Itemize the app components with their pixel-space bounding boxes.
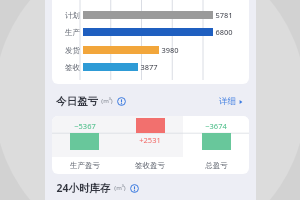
button[interactable]: +2531	[117, 116, 183, 157]
button[interactable]: 签收盈亏	[117, 157, 183, 174]
button[interactable]: 总盈亏	[183, 157, 249, 174]
staticText: −3674	[205, 121, 227, 131]
staticText: 生产	[65, 28, 80, 37]
staticText: 24小时库存	[56, 181, 111, 195]
button[interactable]: 签收	[52, 60, 249, 74]
staticText: 3980	[161, 45, 179, 55]
staticText: 5781	[215, 10, 233, 20]
button[interactable]: −5367	[52, 116, 117, 157]
button[interactable]: 计划	[52, 8, 249, 22]
staticText: (m³)	[114, 184, 126, 192]
staticText: (m³)	[101, 97, 113, 105]
button[interactable]: 信息说明	[117, 97, 126, 106]
button[interactable]: 信息说明	[130, 184, 139, 193]
staticText: −5367	[74, 121, 96, 131]
staticText: 详细	[219, 96, 236, 107]
staticText: +2531	[139, 135, 161, 145]
button[interactable]: 发货	[52, 43, 249, 57]
button[interactable]: 生产盈亏	[52, 157, 117, 174]
staticText: 今日盈亏	[56, 95, 98, 108]
staticText: 6800	[215, 27, 233, 37]
button[interactable]: 生产	[52, 25, 249, 39]
staticText: 签收	[65, 63, 80, 72]
staticText: 发货	[65, 46, 80, 55]
button[interactable]: 详细	[217, 94, 245, 109]
staticText: 总盈亏	[205, 161, 228, 170]
staticText: 生产盈亏	[70, 161, 100, 170]
button[interactable]: −3674	[183, 116, 249, 157]
staticText: 签收盈亏	[135, 161, 165, 170]
staticText: 3877	[140, 62, 158, 72]
staticText: 计划	[65, 11, 80, 20]
